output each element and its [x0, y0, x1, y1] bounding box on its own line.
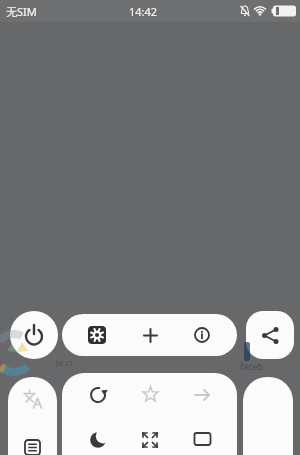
- button[interactable]: [71, 424, 124, 455]
- staticText: faceb: [240, 360, 264, 372]
- button[interactable]: [176, 424, 228, 455]
- staticText: 无SIM: [6, 4, 37, 19]
- button[interactable]: [133, 318, 167, 352]
- button[interactable]: [246, 311, 294, 359]
- button[interactable]: [124, 373, 176, 416]
- button[interactable]: [243, 377, 293, 455]
- button[interactable]: [71, 373, 124, 416]
- button[interactable]: [10, 311, 58, 359]
- button[interactable]: [124, 424, 176, 455]
- button[interactable]: [80, 318, 114, 352]
- button[interactable]: [8, 435, 57, 455]
- button[interactable]: [176, 373, 228, 416]
- button[interactable]: [8, 377, 57, 421]
- button[interactable]: [185, 318, 219, 352]
- staticText: 14:42: [129, 4, 158, 19]
- staticText: te.cr: [55, 356, 74, 368]
